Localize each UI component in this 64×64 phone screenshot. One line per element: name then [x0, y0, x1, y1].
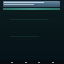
- button[interactable]: Library: [37, 60, 40, 64]
- button[interactable]: Search: [24, 60, 27, 64]
- button[interactable]: [3, 1, 60, 7]
- button[interactable]: [3, 8, 60, 10]
- button[interactable]: Profile: [51, 60, 54, 64]
- button[interactable]: Home: [10, 60, 13, 64]
